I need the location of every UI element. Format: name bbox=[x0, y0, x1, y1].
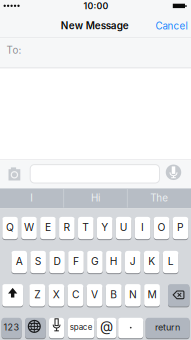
button[interactable]: E bbox=[40, 216, 56, 240]
staticText: R bbox=[63, 221, 70, 233]
button[interactable]: Delete bbox=[168, 284, 189, 307]
staticText: K bbox=[148, 255, 155, 267]
button[interactable]: The bbox=[128, 188, 190, 208]
staticText: G bbox=[91, 255, 99, 267]
staticText: @ bbox=[100, 318, 113, 335]
button[interactable]: G bbox=[87, 250, 103, 274]
button[interactable]: 123 bbox=[2, 317, 21, 339]
button[interactable]: . bbox=[118, 317, 143, 339]
button[interactable]: H bbox=[106, 250, 122, 274]
staticText: space bbox=[70, 322, 93, 332]
staticText: F bbox=[73, 255, 79, 267]
button[interactable]: Shift bbox=[2, 284, 23, 307]
staticText: W bbox=[24, 221, 34, 233]
staticText: Z bbox=[34, 288, 40, 301]
staticText: I bbox=[141, 221, 144, 233]
button[interactable]: @ bbox=[97, 317, 116, 339]
button[interactable]: Camera bbox=[6, 166, 22, 183]
button[interactable]: F bbox=[68, 250, 84, 274]
button[interactable]: M bbox=[144, 284, 160, 307]
staticText: To: bbox=[6, 44, 21, 56]
staticText: return bbox=[155, 322, 180, 333]
staticText: L bbox=[168, 255, 174, 267]
button[interactable]: T bbox=[78, 216, 94, 240]
button[interactable]: V bbox=[87, 284, 102, 307]
button[interactable]: J bbox=[125, 250, 141, 274]
button[interactable]: P bbox=[173, 216, 188, 240]
button[interactable]: Z bbox=[29, 284, 45, 307]
staticText: T bbox=[82, 221, 89, 233]
staticText: E bbox=[45, 221, 51, 233]
staticText: I bbox=[30, 192, 33, 204]
button[interactable]: B bbox=[106, 284, 122, 307]
staticText: P bbox=[177, 221, 184, 233]
button[interactable]: I bbox=[1, 188, 63, 208]
staticText: V bbox=[91, 288, 98, 301]
staticText: C bbox=[72, 288, 79, 301]
staticText: Cancel bbox=[155, 20, 187, 32]
staticText: The bbox=[150, 192, 168, 204]
staticText: S bbox=[35, 255, 42, 267]
staticText: O bbox=[157, 221, 165, 233]
staticText: A bbox=[16, 255, 23, 267]
staticText: Y bbox=[101, 221, 108, 233]
button[interactable]: X bbox=[48, 284, 64, 307]
button[interactable]: C bbox=[68, 284, 83, 307]
button[interactable]: Next keyboard bbox=[25, 317, 46, 339]
button[interactable]: L bbox=[163, 250, 178, 274]
button[interactable]: R bbox=[59, 216, 75, 240]
button[interactable]: A bbox=[11, 250, 27, 274]
button[interactable]: Dictation bbox=[166, 165, 181, 180]
staticText: 10:00 bbox=[83, 1, 108, 11]
button[interactable]: D bbox=[49, 250, 65, 274]
button[interactable]: Dictate bbox=[49, 317, 64, 339]
staticText: X bbox=[53, 288, 60, 301]
button[interactable]: Hi bbox=[64, 188, 126, 208]
button[interactable]: O bbox=[154, 216, 169, 240]
button[interactable]: I bbox=[135, 216, 150, 240]
button[interactable]: Q bbox=[2, 216, 18, 240]
button[interactable]: Y bbox=[97, 216, 113, 240]
button[interactable]: W bbox=[21, 216, 37, 240]
staticText: M bbox=[147, 288, 156, 301]
button[interactable]: Message field bbox=[30, 165, 159, 183]
staticText: N bbox=[129, 288, 137, 301]
staticText: B bbox=[110, 288, 117, 301]
button[interactable]: N bbox=[125, 284, 141, 307]
staticText: H bbox=[110, 255, 118, 267]
staticText: Q bbox=[6, 221, 14, 233]
staticText: New Message bbox=[61, 20, 129, 32]
button[interactable]: S bbox=[30, 250, 46, 274]
button[interactable]: U bbox=[116, 216, 131, 240]
staticText: U bbox=[120, 221, 128, 233]
button[interactable]: space bbox=[68, 317, 94, 339]
button[interactable]: Cancel bbox=[127, 18, 187, 34]
staticText: 123 bbox=[3, 322, 19, 333]
staticText: D bbox=[54, 255, 61, 267]
staticText: J bbox=[130, 255, 136, 267]
button[interactable]: return bbox=[146, 317, 189, 339]
button[interactable]: K bbox=[144, 250, 159, 274]
staticText: Hi bbox=[91, 192, 100, 204]
